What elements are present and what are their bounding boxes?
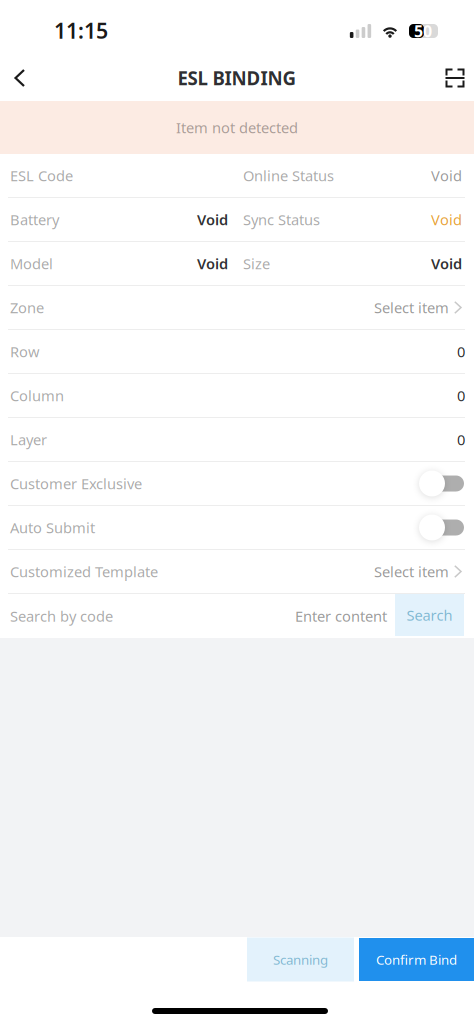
staticText: 0 — [457, 430, 465, 449]
staticText: Model — [10, 254, 53, 273]
staticText: Scanning — [273, 951, 328, 968]
button[interactable]: Search — [395, 594, 464, 636]
staticText: ESL Code — [10, 166, 73, 185]
staticText: Column — [10, 386, 64, 405]
staticText: Search — [406, 605, 452, 625]
button[interactable]: Back — [3, 55, 37, 101]
staticText: Row — [10, 342, 40, 361]
button[interactable]: Confirm Bind — [359, 938, 474, 981]
staticText: Select item — [374, 562, 449, 581]
button[interactable]: Auto Submit — [418, 514, 463, 540]
staticText: Void — [431, 210, 462, 229]
staticText: 0 — [457, 386, 465, 405]
staticText: Search by code — [10, 606, 113, 626]
staticText: Sync Status — [243, 210, 320, 229]
staticText: Void — [197, 254, 228, 273]
button[interactable]: Zone — [0, 286, 474, 329]
staticText: Confirm Bind — [376, 951, 457, 968]
staticText: Battery — [10, 210, 59, 229]
staticText: Size — [243, 254, 270, 273]
staticText: Void — [431, 166, 462, 185]
staticText: Item not detected — [176, 118, 298, 137]
staticText: Enter content — [295, 606, 387, 626]
button[interactable]: Scan barcode — [437, 55, 473, 101]
staticText: Zone — [10, 298, 44, 317]
staticText: Select item — [374, 298, 449, 317]
staticText: 50 — [414, 20, 432, 42]
button[interactable]: Customized Template — [0, 550, 474, 593]
staticText: Online Status — [243, 166, 334, 185]
button[interactable]: Customer Exclusive — [418, 470, 463, 496]
staticText: 11:15 — [54, 16, 108, 45]
staticText: Void — [431, 254, 462, 273]
staticText: Customized Template — [10, 562, 158, 581]
button[interactable]: Scanning — [247, 937, 354, 981]
staticText: Layer — [10, 430, 47, 449]
staticText: Customer Exclusive — [10, 474, 142, 493]
staticText: ESL BINDING — [177, 66, 296, 90]
staticText: 0 — [457, 342, 465, 361]
staticText: Void — [197, 210, 228, 229]
staticText: Auto Submit — [10, 518, 95, 537]
